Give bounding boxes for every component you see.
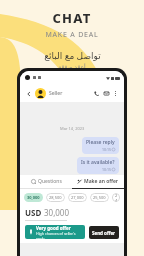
staticText: تواصل مع البائع — [44, 49, 101, 61]
button[interactable]: Back — [24, 89, 33, 98]
staticText: Very good offer — [36, 225, 71, 231]
staticText: Seller — [49, 90, 63, 97]
staticText: أعقد صفقة — [58, 63, 86, 71]
staticText: 10:15 — [102, 167, 111, 172]
staticText: USD — [25, 207, 42, 218]
staticText: 28,500 — [49, 195, 62, 200]
button[interactable]: Call — [91, 88, 101, 98]
button[interactable]: 24,000 — [112, 193, 120, 202]
staticText: 10:15 — [102, 147, 111, 152]
button[interactable]: Is it available? — [77, 157, 119, 174]
button[interactable]: Make an offer — [72, 175, 124, 188]
staticText: 30,000 — [27, 195, 40, 200]
staticText: 30,000 — [44, 207, 70, 218]
staticText: Make an offer — [84, 178, 119, 185]
staticText: Send offer — [92, 230, 116, 236]
button[interactable]: More options — [111, 89, 120, 98]
staticText: Questions — [38, 178, 62, 185]
staticText: Is it available? — [81, 159, 115, 166]
staticText: Please reply — [86, 139, 115, 146]
button[interactable]: 25,500 — [90, 193, 109, 202]
button[interactable]: Please reply — [82, 137, 119, 154]
staticText: 24,000 — [115, 193, 117, 202]
button[interactable]: 27,000 — [68, 193, 87, 202]
button[interactable]: 30,000 — [24, 193, 43, 202]
staticText: High chances of seller's reply — [36, 231, 82, 239]
button[interactable]: Questions — [20, 175, 72, 188]
button[interactable]: Message — [101, 88, 111, 98]
button[interactable]: 28,500 — [46, 193, 65, 202]
staticText: MAKE A DEAL — [45, 30, 99, 40]
staticText: 27,000 — [71, 195, 84, 200]
staticText: Mar 14, 2023 — [60, 126, 85, 131]
button[interactable]: Very good offer — [25, 225, 85, 239]
staticText: 25,500 — [93, 195, 106, 200]
staticText: CHAT — [52, 9, 92, 27]
button[interactable]: Send offer — [89, 226, 119, 239]
